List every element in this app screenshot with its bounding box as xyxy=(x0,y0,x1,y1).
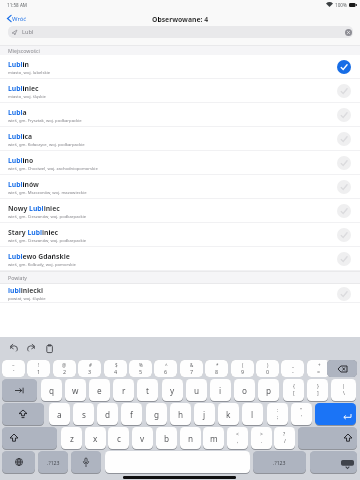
button[interactable]: .?123 xyxy=(38,451,68,473)
button[interactable]: { xyxy=(283,379,304,401)
button[interactable]: d xyxy=(97,403,118,425)
button[interactable]: ? xyxy=(274,427,295,449)
button[interactable]: z xyxy=(61,427,82,449)
button[interactable]: | xyxy=(331,379,356,401)
button[interactable] xyxy=(337,228,351,242)
button[interactable]: e xyxy=(89,379,110,401)
staticText: Lublinów xyxy=(8,180,39,189)
button[interactable]: q xyxy=(41,379,62,401)
button[interactable]: f xyxy=(121,403,142,425)
staticText: miasto, woj. lubelskie xyxy=(8,70,51,76)
button[interactable]: c xyxy=(108,427,129,449)
button[interactable] xyxy=(337,108,351,122)
button[interactable] xyxy=(337,60,351,74)
button[interactable]: v xyxy=(132,427,153,449)
button[interactable]: .?123 xyxy=(253,451,306,473)
staticText: ] xyxy=(317,390,319,397)
button[interactable] xyxy=(337,156,351,170)
button[interactable]: & xyxy=(180,360,203,377)
button[interactable] xyxy=(105,451,250,473)
button[interactable]: a xyxy=(49,403,70,425)
button[interactable]: ) xyxy=(256,360,279,377)
button[interactable]: u xyxy=(186,379,207,401)
button[interactable]: g xyxy=(146,403,167,425)
button[interactable]: : xyxy=(267,403,288,425)
button[interactable]: } xyxy=(307,379,328,401)
button[interactable]: j xyxy=(194,403,215,425)
button[interactable]: $ xyxy=(104,360,127,377)
button[interactable] xyxy=(327,360,357,377)
staticText: @ xyxy=(62,362,67,368)
button[interactable]: Stary Lubliniec xyxy=(0,223,360,247)
button[interactable]: Lublin xyxy=(0,55,360,79)
button[interactable] xyxy=(9,344,19,353)
staticText: wieś, gm. Cieszanów, woj. podkarpackie xyxy=(8,214,87,220)
button[interactable]: w xyxy=(65,379,86,401)
button[interactable]: _ xyxy=(281,360,304,377)
button[interactable]: + xyxy=(307,360,330,377)
button[interactable] xyxy=(337,204,351,218)
button[interactable] xyxy=(71,451,101,473)
staticText: s xyxy=(82,409,86,420)
staticText: t xyxy=(146,385,149,396)
staticText: : xyxy=(277,407,279,414)
button[interactable]: b xyxy=(156,427,177,449)
button[interactable]: Lubl xyxy=(8,26,353,38)
button[interactable]: " xyxy=(291,403,312,425)
button[interactable] xyxy=(2,379,37,401)
button[interactable]: r xyxy=(113,379,134,401)
button[interactable] xyxy=(315,403,356,425)
button[interactable]: p xyxy=(258,379,279,401)
button[interactable] xyxy=(298,427,357,449)
button[interactable]: > xyxy=(251,427,272,449)
button[interactable]: Lubla xyxy=(0,103,360,127)
button[interactable]: Lublewo Gdańskie xyxy=(0,247,360,271)
button[interactable] xyxy=(337,84,351,98)
button[interactable]: i xyxy=(210,379,231,401)
button[interactable] xyxy=(2,403,44,425)
button[interactable]: Lublica xyxy=(0,127,360,151)
button[interactable] xyxy=(337,132,351,146)
button[interactable] xyxy=(2,451,35,473)
button[interactable] xyxy=(337,252,351,266)
button[interactable]: lubliniecki xyxy=(0,284,360,303)
button[interactable]: x xyxy=(85,427,106,449)
button[interactable]: * xyxy=(205,360,228,377)
button[interactable]: < xyxy=(227,427,248,449)
button[interactable] xyxy=(337,287,351,301)
button[interactable]: o xyxy=(234,379,255,401)
button[interactable]: ^ xyxy=(154,360,177,377)
button[interactable]: ( xyxy=(231,360,254,377)
button[interactable] xyxy=(310,451,357,473)
button[interactable]: ~ xyxy=(2,360,25,377)
button[interactable] xyxy=(345,29,352,36)
button[interactable]: h xyxy=(170,403,191,425)
button[interactable]: s xyxy=(73,403,94,425)
button[interactable]: Lubliniec xyxy=(0,79,360,103)
button[interactable] xyxy=(26,344,36,353)
staticText: 6 xyxy=(164,368,168,375)
staticText: ` xyxy=(13,368,15,375)
button[interactable]: # xyxy=(78,360,101,377)
button[interactable]: ! xyxy=(27,360,50,377)
button[interactable] xyxy=(2,427,57,449)
button[interactable] xyxy=(337,180,351,194)
button[interactable]: k xyxy=(218,403,239,425)
button[interactable]: l xyxy=(242,403,263,425)
button[interactable] xyxy=(46,344,54,354)
button[interactable]: % xyxy=(129,360,152,377)
button[interactable]: @ xyxy=(53,360,76,377)
staticText: } xyxy=(317,383,319,390)
button[interactable]: Wróć xyxy=(4,12,40,25)
staticText: Lubliniec xyxy=(8,84,39,93)
button[interactable]: n xyxy=(180,427,201,449)
button[interactable]: y xyxy=(162,379,183,401)
button[interactable]: Nowy Lubliniec xyxy=(0,199,360,223)
button[interactable]: t xyxy=(137,379,158,401)
staticText: # xyxy=(89,362,92,368)
button[interactable]: Lublinów xyxy=(0,175,360,199)
staticText: x xyxy=(93,433,98,444)
button[interactable]: Lublino xyxy=(0,151,360,175)
staticText: 100% xyxy=(335,2,347,8)
button[interactable]: m xyxy=(203,427,224,449)
